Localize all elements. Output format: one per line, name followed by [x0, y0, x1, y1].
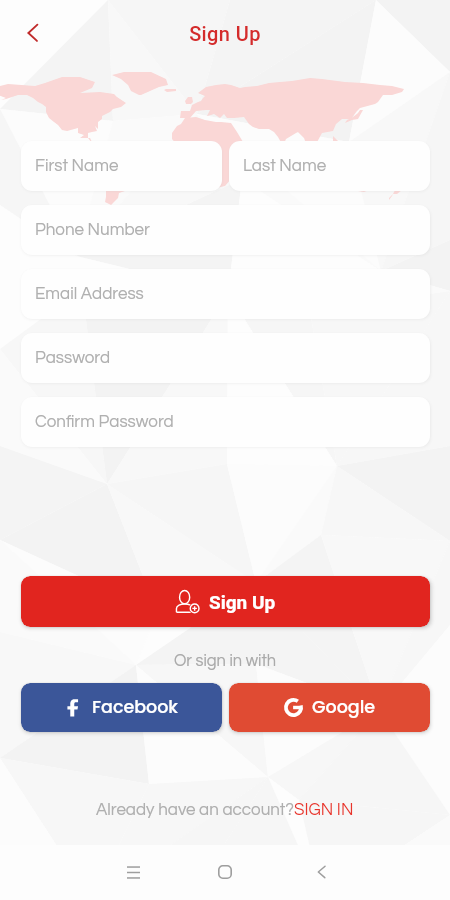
button[interactable]: Confirm Password — [21, 397, 430, 447]
staticText: Sign Up — [209, 591, 276, 613]
staticText: Email Address — [35, 285, 144, 303]
button[interactable]: Google — [229, 683, 430, 732]
staticText: SIGN IN — [294, 801, 354, 819]
staticText: Last Name — [243, 157, 327, 175]
button[interactable]: First Name — [21, 141, 222, 191]
button[interactable]: Back — [298, 850, 342, 894]
staticText: Google — [312, 695, 376, 720]
staticText: Facebook — [92, 695, 179, 720]
button[interactable]: SIGN IN — [294, 801, 354, 819]
staticText: Sign Up — [0, 22, 450, 45]
staticText: Password — [35, 349, 111, 367]
staticText: Confirm Password — [35, 413, 174, 431]
button[interactable]: Back — [12, 12, 54, 54]
button[interactable]: Home — [203, 850, 247, 894]
button[interactable]: Recents — [111, 850, 155, 894]
button[interactable]: Email Address — [21, 269, 430, 319]
staticText: Or sign in with — [0, 652, 450, 669]
staticText: Phone Number — [35, 221, 150, 239]
button[interactable]: Password — [21, 333, 430, 383]
button[interactable]: Sign Up — [21, 576, 430, 627]
staticText: First Name — [35, 157, 119, 175]
staticText: Already have an account? — [96, 801, 294, 819]
button[interactable]: Last Name — [229, 141, 430, 191]
button[interactable]: Phone Number — [21, 205, 430, 255]
button[interactable]: Facebook — [21, 683, 222, 732]
